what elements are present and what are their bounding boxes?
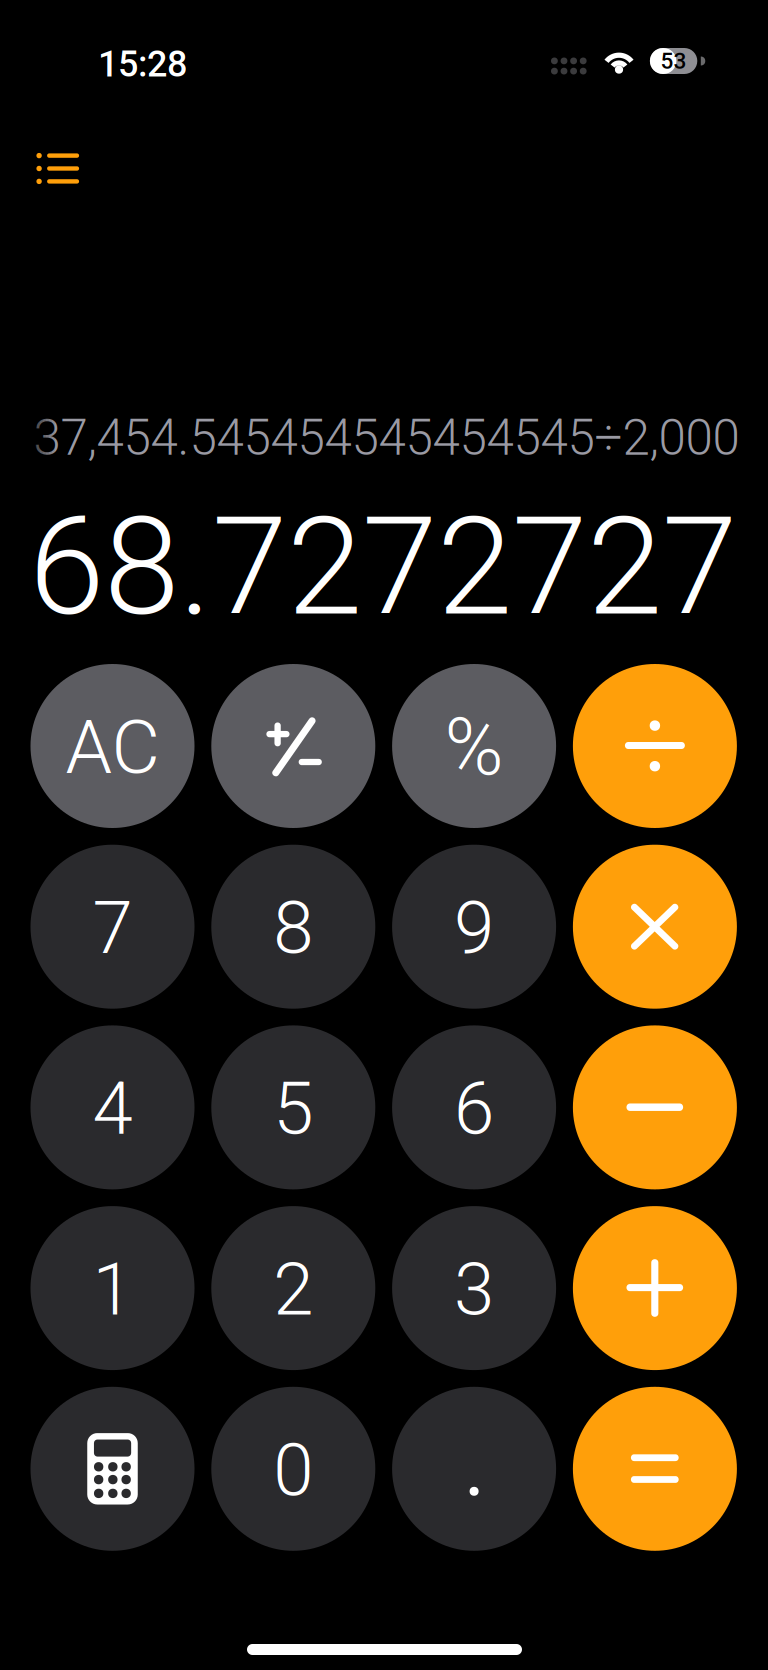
- staticText: 15:28: [98, 43, 187, 85]
- staticText: %: [445, 700, 504, 794]
- button[interactable]: Subtract: [573, 1025, 737, 1189]
- staticText: 4: [92, 1066, 132, 1151]
- staticText: 3: [454, 1247, 494, 1332]
- button[interactable]: Plus Minus: [211, 664, 375, 828]
- button[interactable]: 9: [392, 845, 556, 1009]
- button[interactable]: 2: [211, 1206, 375, 1370]
- button[interactable]: 3: [392, 1206, 556, 1370]
- button[interactable]: Equals: [573, 1387, 737, 1551]
- button[interactable]: AC: [30, 664, 194, 828]
- button[interactable]: 8: [211, 845, 375, 1009]
- staticText: 5: [273, 1066, 313, 1151]
- staticText: 7: [92, 886, 132, 971]
- button[interactable]: 6: [392, 1025, 556, 1189]
- staticText: 68.7272727: [29, 487, 737, 647]
- button[interactable]: 4: [30, 1025, 194, 1189]
- button[interactable]: Calculator: [30, 1387, 194, 1551]
- button[interactable]: Multiply: [573, 845, 737, 1009]
- staticText: 6: [454, 1066, 494, 1151]
- staticText: 53: [661, 48, 687, 74]
- button[interactable]: History: [18, 135, 97, 202]
- button[interactable]: Divide: [573, 664, 737, 828]
- button[interactable]: 7: [30, 845, 194, 1009]
- staticText: 8: [273, 886, 313, 971]
- button[interactable]: %: [392, 664, 556, 828]
- button[interactable]: 0: [211, 1387, 375, 1551]
- staticText: 37,454.545454545454545÷2,000: [33, 409, 739, 467]
- staticText: 2: [273, 1247, 313, 1332]
- staticText: AC: [65, 704, 159, 791]
- button[interactable]: Add: [573, 1206, 737, 1370]
- staticText: 9: [454, 886, 494, 971]
- button[interactable]: 5: [211, 1025, 375, 1189]
- staticText: 0: [273, 1428, 313, 1513]
- button[interactable]: 1: [30, 1206, 194, 1370]
- staticText: 1: [92, 1247, 132, 1332]
- button[interactable]: Decimal point: [392, 1387, 556, 1551]
